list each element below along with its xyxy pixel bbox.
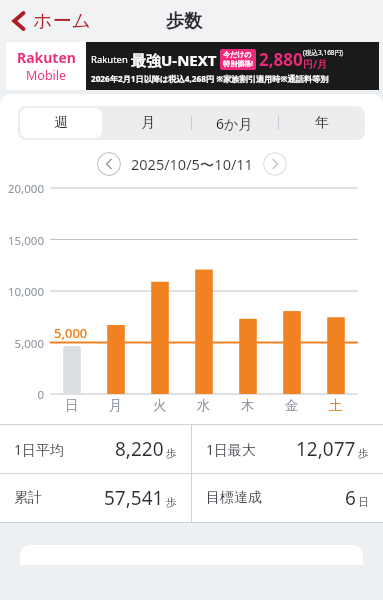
button[interactable]: 1日平均 [0,425,191,473]
staticText: 歩 [358,446,369,460]
staticText: 12,077 [296,436,356,462]
staticText: 水 [197,397,211,414]
staticText: 10,000 [0,284,44,300]
staticText: 2025/10/5〜10/11 [131,154,253,174]
staticText: 週 [54,114,68,132]
staticText: 日 [358,495,369,509]
staticText: 歩 [166,495,177,509]
staticText: 8,220 [115,436,164,462]
staticText: 累計 [14,489,42,507]
staticText: 1日平均 [14,440,65,459]
button[interactable]: 6か月 [191,106,278,140]
staticText: 1日最大 [206,440,257,459]
staticText: 月 [109,397,123,414]
staticText: 木 [241,397,255,414]
staticText: 最強U-NEXT [131,50,217,70]
staticText: 20,000 [0,181,44,197]
staticText: 2026年2月1日以降は税込4,268円 ※家族割引適用時※通話料等別 [91,73,329,84]
staticText: 6か月 [216,114,253,133]
staticText: 今だけの [223,50,252,59]
staticText: 57,541 [104,485,164,511]
staticText: Mobile [26,67,67,84]
button[interactable]: 次の週 [263,152,287,176]
staticText: 歩 [166,446,177,460]
button[interactable]: 月 [104,106,191,140]
staticText: 特別価格! [223,59,253,69]
staticText: 6 [345,485,356,511]
button[interactable]: 年 [278,106,365,140]
button[interactable]: ホーム [8,5,95,37]
staticText: (税込3,168円) [303,48,344,57]
staticText: ホーム [33,9,91,33]
staticText: 5,000 [54,324,88,342]
staticText: Rakuten [17,48,76,67]
staticText: 5,000 [0,336,44,352]
staticText: 歩数 [166,10,202,33]
staticText: 年 [315,114,329,132]
staticText: 金 [285,397,299,414]
staticText: Rakuten [91,53,131,66]
staticText: 月 [141,114,155,132]
staticText: 2,880 [259,48,303,71]
button[interactable]: 目標達成 [192,474,383,522]
button[interactable]: 累計 [0,474,191,522]
staticText: 土 [329,397,343,414]
staticText: 日 [65,397,79,414]
staticText: 0 [0,387,44,403]
button[interactable]: 前の週 [97,152,121,176]
button[interactable]: 1日最大 [192,425,383,473]
staticText: 円/月 [303,57,328,71]
staticText: 火 [153,397,167,414]
button[interactable]: 週 [18,106,104,140]
staticText: 目標達成 [206,489,262,507]
staticText: 15,000 [0,233,44,249]
